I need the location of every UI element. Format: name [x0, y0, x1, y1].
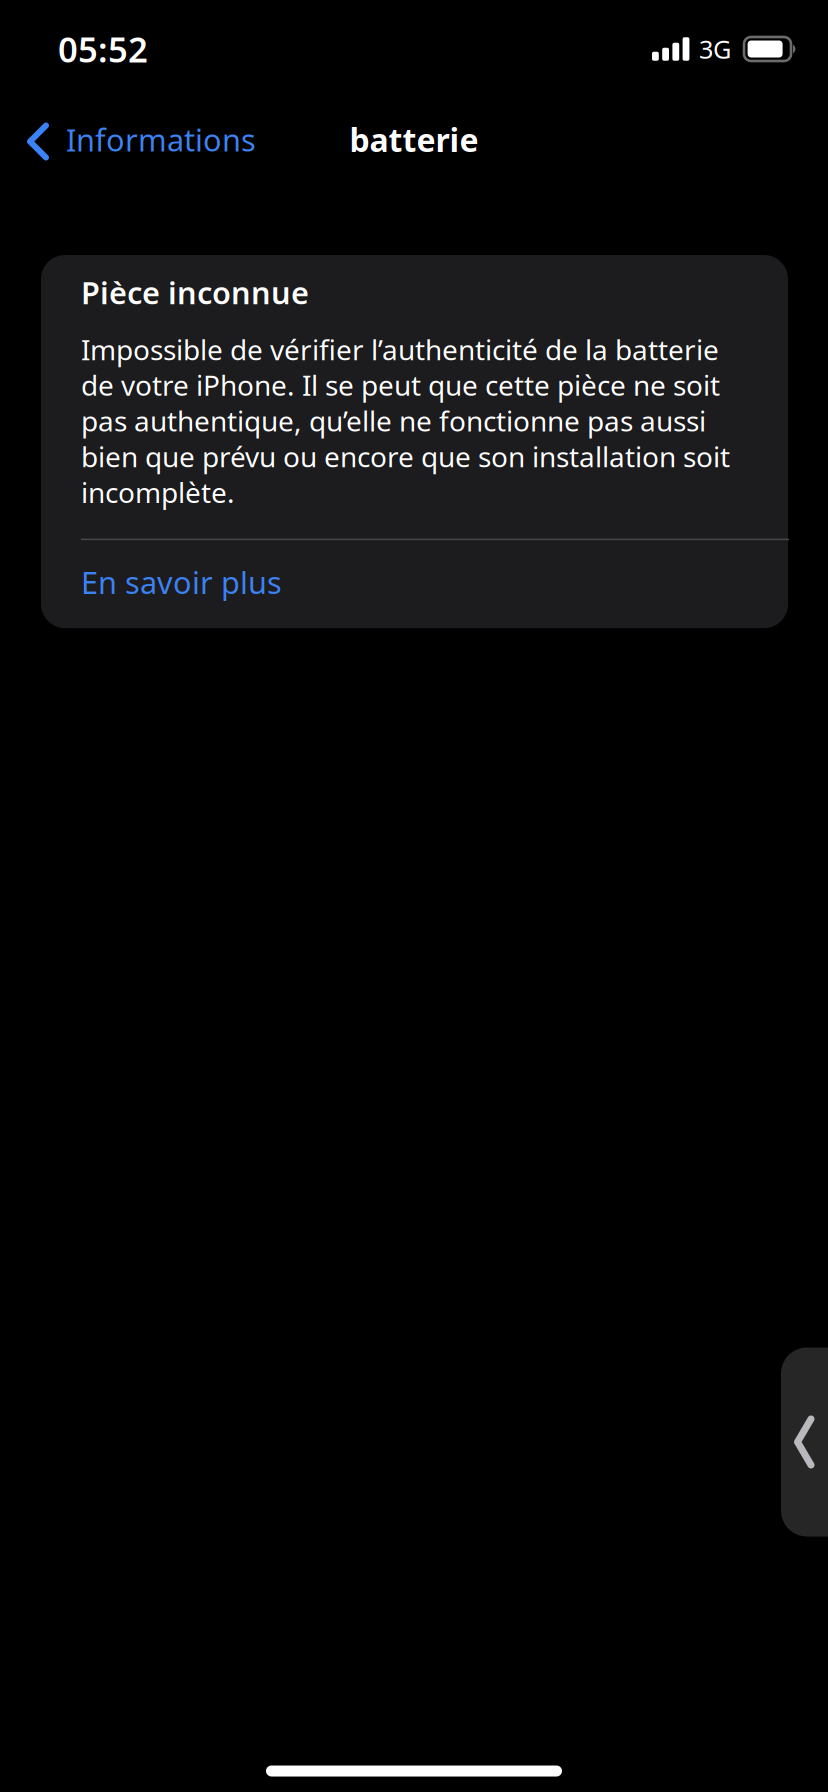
- staticText: 3G: [699, 32, 731, 66]
- staticText: batterie: [349, 118, 478, 161]
- button[interactable]: En savoir plus: [41, 540, 788, 628]
- staticText: En savoir plus: [81, 562, 282, 602]
- button[interactable]: Informations: [0, 110, 284, 173]
- staticText: Informations: [66, 119, 256, 160]
- staticText: Pièce inconnue: [81, 272, 309, 313]
- staticText: 05:52: [58, 26, 148, 72]
- staticText: Impossible de vérifier l’authenticité de…: [81, 331, 730, 511]
- button[interactable]: Back: [781, 1347, 828, 1536]
